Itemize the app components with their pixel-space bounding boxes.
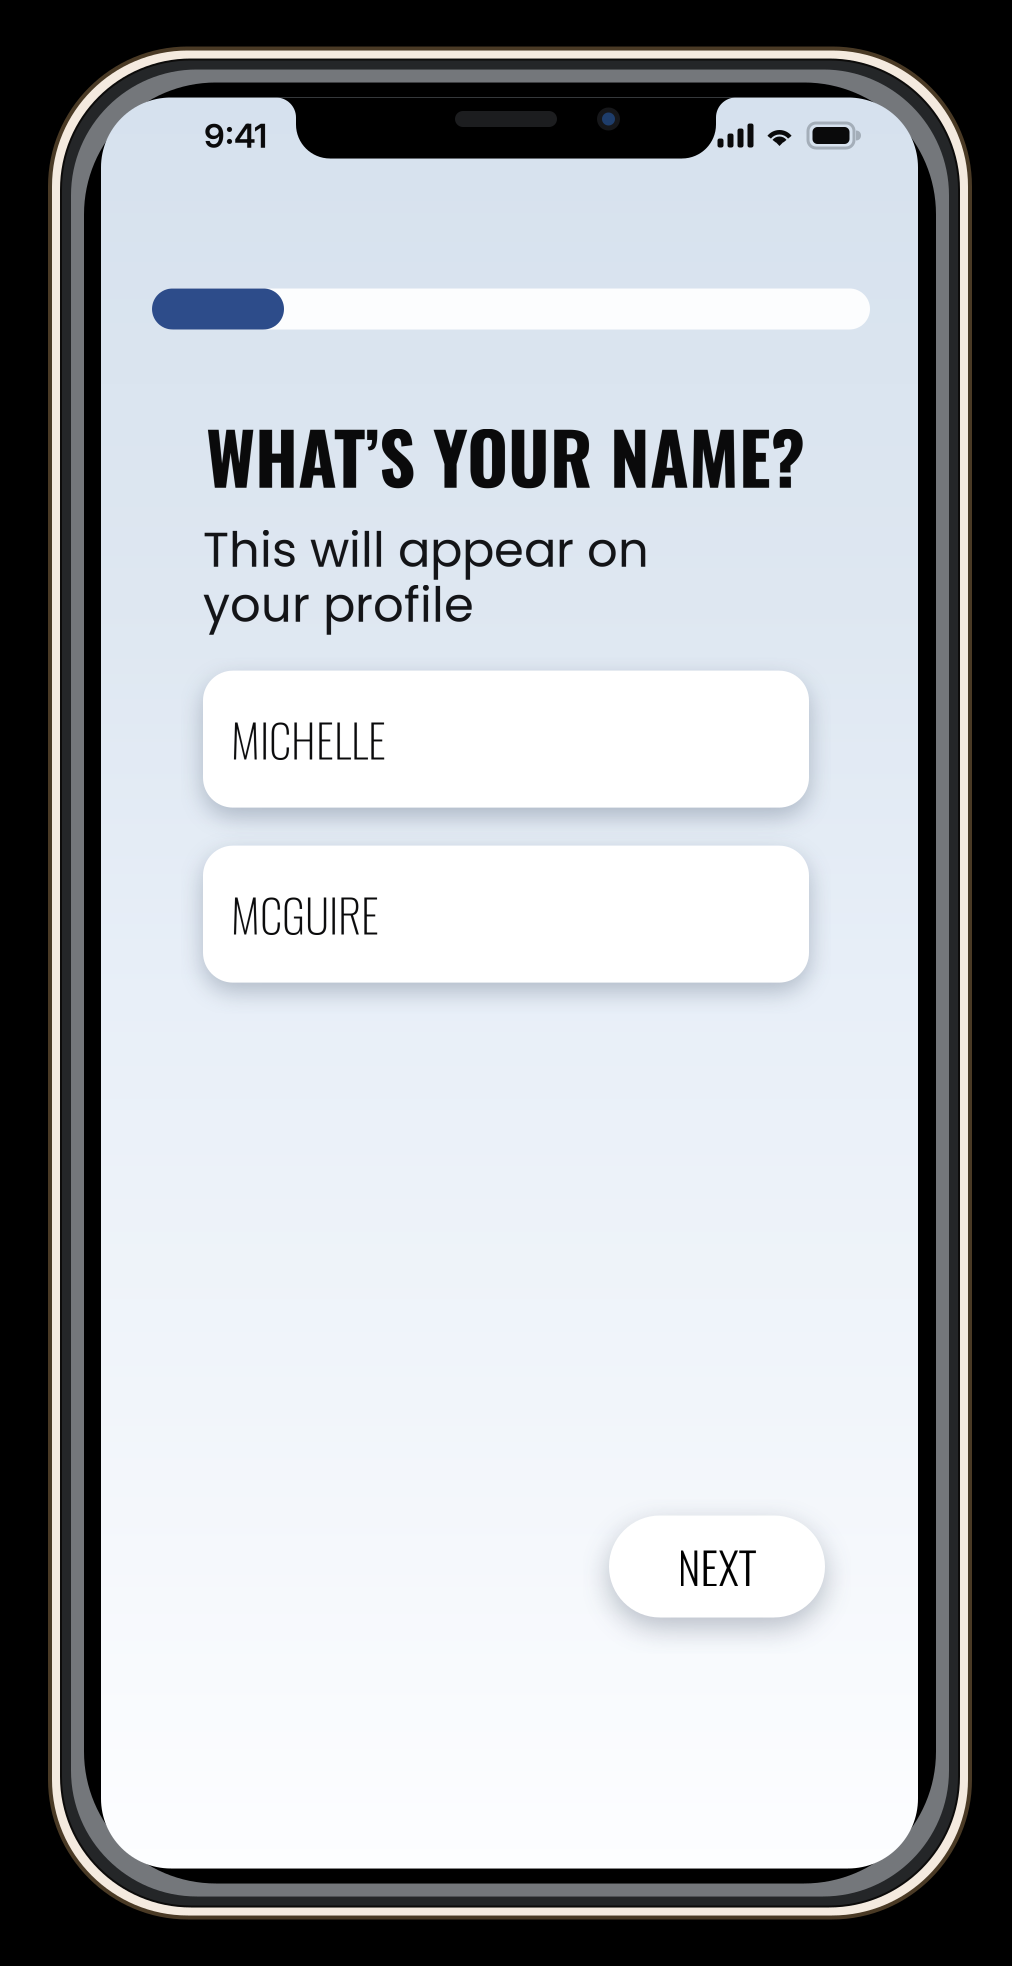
button[interactable]: MCGUIRE: [203, 846, 809, 983]
staticText: MICHELLE: [231, 705, 386, 773]
staticText: MCGUIRE: [231, 880, 379, 948]
staticText: This will appear on: [203, 516, 649, 583]
button[interactable]: NEXT: [609, 1515, 825, 1617]
staticText: NEXT: [677, 1534, 756, 1599]
staticText: WHAT’S YOUR NAME?: [206, 403, 805, 508]
staticText: 9:41: [204, 115, 267, 156]
button[interactable]: MICHELLE: [203, 671, 809, 808]
staticText: your profile: [203, 571, 474, 639]
